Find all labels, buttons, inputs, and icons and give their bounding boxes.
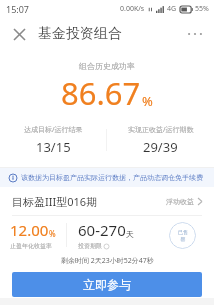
staticText: 该数据为目标盈产品实际运行数据，产品动态调仓免手续费 [21,173,203,182]
staticText: 浮动收益 [166,197,194,206]
staticText: 55% [195,4,209,14]
staticText: 组合历史成功率 [79,61,135,71]
staticText: 投资期限 [78,242,102,250]
staticText: % [49,228,56,239]
staticText: 目标盈III型016期 [12,194,98,209]
button[interactable]: 立即参与 [12,272,202,297]
button[interactable]: More options [184,23,206,45]
staticText: 29/39 [143,138,178,156]
staticText: 基金投资组合 [38,25,122,43]
staticText: 12.00 [10,220,49,240]
staticText: 达成目标/运行结果 [24,125,83,135]
staticText: 天 [126,229,134,239]
button[interactable]: Close [8,23,30,45]
staticText: 实现正收益/运行期数 [128,125,194,135]
staticText: 4G [167,4,177,14]
button[interactable]: 目标盈III型016期 [0,187,214,215]
staticText: 止盈年化收益率 [10,242,52,250]
staticText: 13/15 [36,138,71,156]
staticText: 86.67 [61,72,141,114]
staticText: 60-270 [78,220,126,240]
staticText: 15:07 [6,3,30,15]
staticText: 已售 罄 [178,229,188,243]
staticText: 0.00K/s [120,4,145,14]
staticText: 立即参与 [83,277,131,292]
staticText: 剩余时间 2天23小时52分47秒 [61,256,154,266]
staticText: % [142,92,153,110]
